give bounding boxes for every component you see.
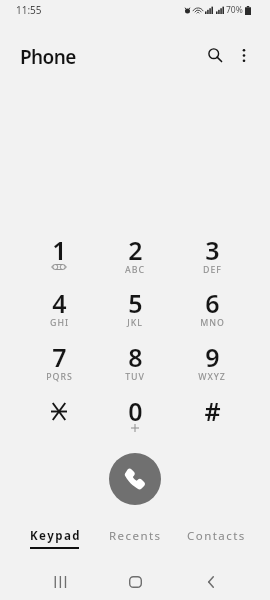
button[interactable]: Recents <box>95 522 175 554</box>
staticText: 8 <box>128 340 143 374</box>
button[interactable]: 5 <box>103 273 167 323</box>
staticText: 7 <box>52 340 67 374</box>
staticText: Phone <box>20 44 76 70</box>
button[interactable]: Call <box>109 453 161 505</box>
staticText: 5 <box>128 286 143 320</box>
button[interactable]: Back <box>187 563 235 600</box>
staticText: 3 <box>205 233 220 267</box>
staticText: # <box>204 394 221 428</box>
staticText: Recents <box>109 528 162 544</box>
staticText: JKL <box>127 317 143 329</box>
button[interactable]: 7 <box>27 327 91 377</box>
staticText: WXYZ <box>198 371 226 383</box>
staticText: MNO <box>200 317 225 329</box>
staticText: Keypad <box>30 528 81 544</box>
button[interactable]: Recent apps <box>36 563 84 600</box>
button[interactable]: 8 <box>103 327 167 377</box>
staticText: TUV <box>125 371 145 383</box>
staticText: 6 <box>205 286 220 320</box>
staticText: DEF <box>203 264 222 276</box>
button[interactable]: Keypad <box>15 522 95 554</box>
staticText: Contacts <box>187 528 246 544</box>
button[interactable]: # <box>180 381 244 431</box>
staticText: ABC <box>125 264 145 276</box>
button[interactable]: Home <box>111 563 159 600</box>
staticText: 70% <box>226 4 243 16</box>
staticText: 4 <box>52 286 67 320</box>
staticText: 11:55 <box>16 3 42 17</box>
staticText: 0 <box>128 394 143 428</box>
button[interactable] <box>27 381 91 431</box>
button[interactable]: More options <box>228 39 260 71</box>
button[interactable]: 2 <box>103 220 167 270</box>
button[interactable]: 3 <box>180 220 244 270</box>
button[interactable]: 9 <box>180 327 244 377</box>
staticText: GHI <box>50 317 69 329</box>
button[interactable]: Contacts <box>176 522 256 554</box>
staticText: 9 <box>205 340 220 374</box>
button[interactable]: Search <box>199 39 231 71</box>
button[interactable]: 6 <box>180 273 244 323</box>
staticText: 1 <box>52 233 67 267</box>
button[interactable]: 0 <box>103 381 167 431</box>
button[interactable]: 4 <box>27 273 91 323</box>
staticText: 2 <box>128 233 143 267</box>
button[interactable]: 1 <box>27 220 91 270</box>
staticText: PQRS <box>46 371 73 383</box>
